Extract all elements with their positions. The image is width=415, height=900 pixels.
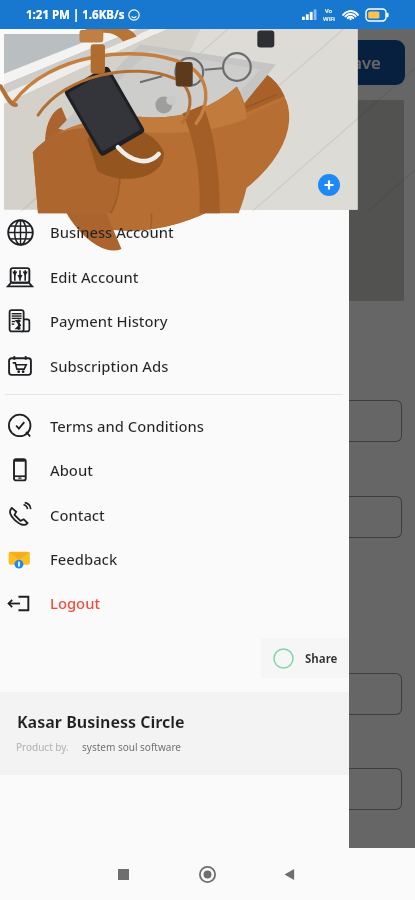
button[interactable]: Share [261,638,349,678]
button[interactable]: About [0,448,349,492]
staticText: Logout [50,593,101,613]
button[interactable]: Back [267,852,311,896]
staticText: Business Account [50,222,174,242]
button[interactable]: Payment History [0,299,349,343]
button[interactable]: Logout [0,581,349,625]
button[interactable]: Add [318,174,340,196]
staticText: Feedback [50,549,118,569]
button[interactable]: Contact [0,493,349,537]
staticText: Save [343,51,381,74]
staticText: Kasar Business Circle [17,711,185,733]
button[interactable]: Subscription Ads [0,344,349,388]
staticText: Terms and Conditions [50,416,204,436]
staticText: Vo [325,7,333,15]
staticText: About [50,460,93,480]
button[interactable]: Home [185,852,229,896]
staticText: Edit Account [50,267,139,287]
staticText: Subscription Ads [50,356,169,376]
staticText: system soul software [82,740,182,754]
button[interactable]: Edit Account [0,255,349,299]
staticText: Product by. [16,740,69,754]
button[interactable]: Business Account [0,210,349,254]
staticText: Share [305,651,338,667]
button[interactable]: Terms and Conditions [0,404,349,448]
button[interactable]: Save [318,40,405,85]
staticText: Payment History [50,311,168,331]
button[interactable]: Recents [101,852,145,896]
staticText: WiFi [323,15,335,23]
staticText: 1:21 PM | 1.6KB/s [26,7,125,23]
button[interactable]: Feedback [0,537,349,581]
staticText: Contact [50,505,105,525]
